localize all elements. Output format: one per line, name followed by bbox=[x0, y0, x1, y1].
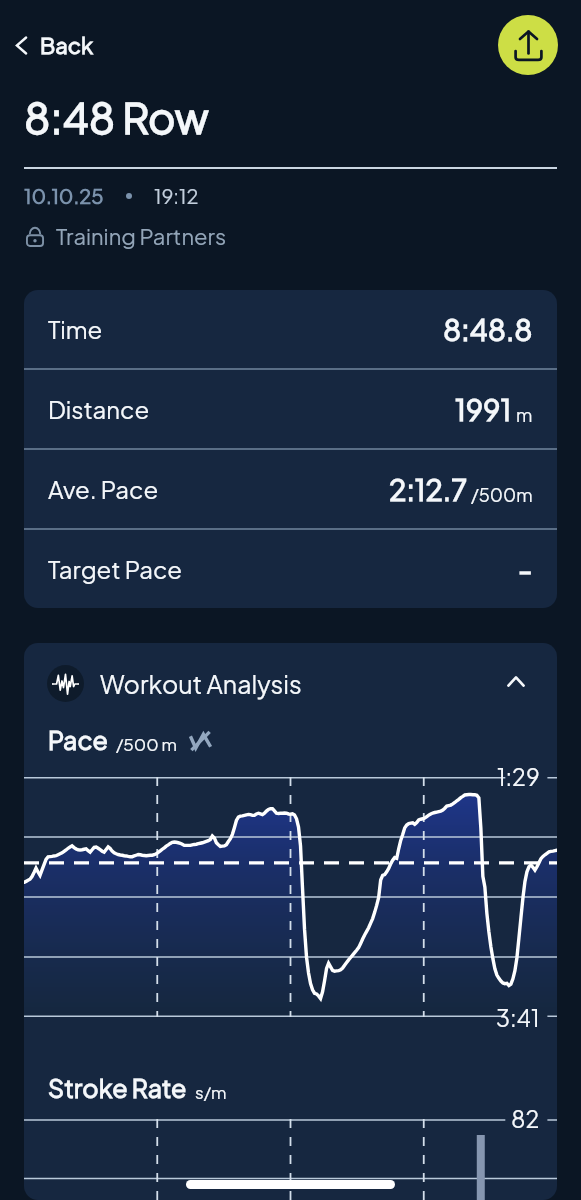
staticText: 10.10.25 bbox=[24, 183, 104, 208]
staticText: - bbox=[518, 551, 533, 588]
staticText: Target Pace bbox=[48, 554, 183, 584]
staticText: Training Partners bbox=[56, 222, 227, 250]
button[interactable]: Share bbox=[498, 15, 558, 75]
staticText: Time bbox=[48, 314, 103, 344]
button[interactable]: Ave. Pace bbox=[24, 450, 557, 528]
staticText: 8:48.8 bbox=[443, 311, 533, 348]
staticText: 1991 bbox=[455, 391, 512, 428]
button[interactable]: Time bbox=[24, 290, 557, 368]
staticText: m bbox=[516, 403, 533, 426]
staticText: Ave. Pace bbox=[48, 474, 159, 504]
staticText: /500m bbox=[471, 483, 533, 506]
staticText: 8:48 Row bbox=[24, 90, 209, 143]
staticText: 82 bbox=[511, 1104, 540, 1133]
staticText: s/m bbox=[195, 1081, 227, 1102]
staticText: Stroke Rate bbox=[48, 1072, 187, 1103]
staticText: 1:29 bbox=[497, 762, 540, 791]
staticText: 19:12 bbox=[154, 183, 199, 208]
staticText: /500 m bbox=[116, 733, 177, 754]
button[interactable]: Target Pace bbox=[24, 530, 557, 608]
staticText: 2:12.7 bbox=[389, 471, 467, 508]
button[interactable]: Distance bbox=[24, 370, 557, 448]
staticText: Pace bbox=[48, 724, 108, 755]
staticText: 3:41 bbox=[496, 1003, 540, 1032]
staticText: Workout Analysis bbox=[100, 668, 302, 699]
staticText: Back bbox=[40, 31, 94, 59]
button[interactable]: Back bbox=[8, 21, 102, 69]
staticText: Distance bbox=[48, 394, 150, 424]
button[interactable]: Workout Analysis bbox=[24, 643, 557, 724]
